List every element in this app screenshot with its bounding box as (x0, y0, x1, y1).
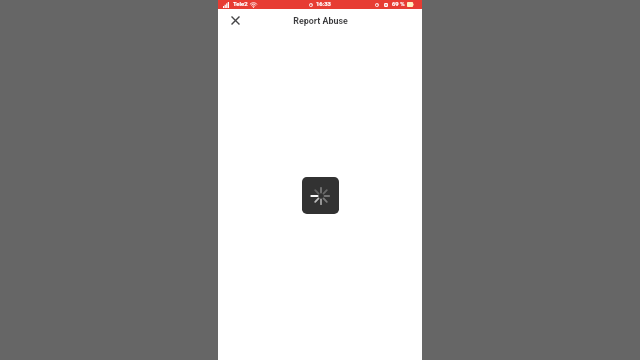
button[interactable]: Close (226, 11, 244, 29)
staticText: Tele2 (233, 1, 248, 8)
staticText: 69 % (392, 1, 405, 8)
staticText: Report Abuse (293, 16, 348, 26)
staticText: 16:33 (316, 1, 331, 8)
other: Loading (302, 177, 339, 214)
